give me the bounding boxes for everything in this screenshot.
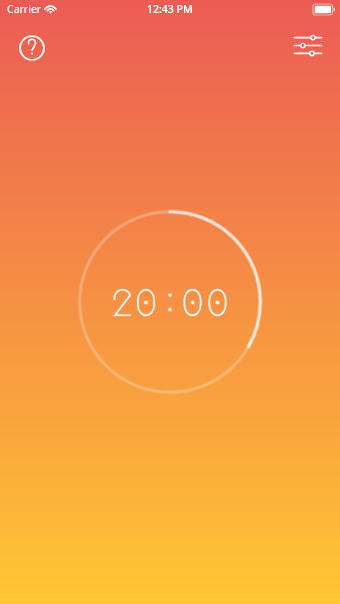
button[interactable]: Settings: [294, 36, 322, 55]
button[interactable]: [77, 209, 263, 395]
staticText: 12:43 PM: [147, 2, 193, 16]
staticText: Carrier: [7, 2, 42, 16]
button[interactable]: Help: [19, 35, 45, 61]
